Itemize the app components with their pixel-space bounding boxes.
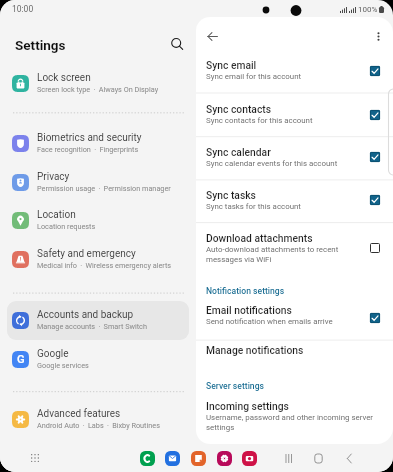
staticText: Sync contacts for this account [206, 116, 313, 125]
button[interactable]: More options [366, 24, 391, 49]
button[interactable] [7, 163, 189, 202]
staticText: Incoming settings [206, 400, 289, 412]
staticText: Sync tasks [206, 189, 256, 201]
staticText: Sync email for this account [206, 72, 302, 81]
staticText: Sync tasks for this account [206, 202, 301, 211]
button[interactable] [196, 390, 393, 441]
button[interactable] [7, 124, 189, 163]
staticText: Settings [15, 37, 66, 53]
staticText: Manage accounts · Smart Switch [37, 322, 147, 331]
staticText: Auto-download attachments to recent mess… [206, 245, 339, 264]
button[interactable] [196, 136, 393, 179]
button[interactable] [7, 64, 189, 103]
staticText: Google services [37, 361, 89, 370]
button[interactable] [242, 451, 257, 466]
button[interactable] [7, 201, 189, 240]
button[interactable]: Apps [25, 448, 45, 468]
button[interactable] [196, 222, 393, 275]
button[interactable] [196, 179, 393, 222]
staticText: Face recognition · Fingerprints [37, 145, 139, 154]
button[interactable] [196, 338, 393, 361]
staticText: Email notifications [206, 304, 292, 316]
staticText: 10:00 [12, 4, 34, 14]
staticText: Sync email [206, 59, 257, 71]
staticText: Lock screen [37, 72, 91, 84]
staticText: Android Auto · Labs · Bixby Routines [37, 421, 160, 430]
staticText: Google [37, 348, 69, 360]
staticText: 100% [358, 5, 378, 14]
button[interactable] [165, 451, 180, 466]
staticText: Download attachments [206, 232, 313, 244]
staticText: G [17, 353, 25, 366]
staticText: Sync contacts [206, 103, 272, 115]
staticText: Medical info · Wireless emergency alerts [37, 261, 172, 270]
button[interactable]: Back [338, 447, 360, 469]
button[interactable] [196, 294, 393, 340]
button[interactable]: Search [165, 32, 189, 56]
staticText: Sync calendar events for this account [206, 159, 338, 168]
button[interactable] [7, 240, 189, 279]
staticText: Sync calendar [206, 146, 271, 158]
staticText: Accounts and backup [37, 309, 134, 321]
button[interactable] [140, 451, 155, 466]
button[interactable] [217, 451, 232, 466]
staticText: Location [37, 209, 76, 221]
button[interactable]: Navigate up [200, 24, 225, 49]
staticText: Server settings [206, 381, 264, 391]
button[interactable] [7, 301, 189, 340]
staticText: Location requests [37, 222, 96, 231]
button[interactable]: Home [307, 447, 329, 469]
button[interactable] [191, 451, 206, 466]
staticText: Safety and emergency [37, 248, 136, 260]
button[interactable]: Recents [277, 447, 299, 469]
staticText: Biometrics and security [37, 132, 142, 144]
button[interactable] [196, 93, 393, 137]
staticText: Notification settings [206, 286, 285, 296]
staticText: Screen lock type · Always On Display [37, 85, 159, 94]
staticText: Username, password and other incoming se… [206, 413, 374, 432]
staticText: Advanced features [37, 408, 121, 420]
button[interactable] [7, 400, 189, 439]
staticText: Manage notifications [206, 344, 304, 356]
button[interactable] [196, 49, 393, 92]
staticText: Send notification when emails arrive [206, 317, 333, 326]
staticText: Privacy [37, 171, 70, 183]
staticText: Permission usage · Permission manager [37, 184, 171, 193]
button[interactable] [7, 340, 189, 379]
